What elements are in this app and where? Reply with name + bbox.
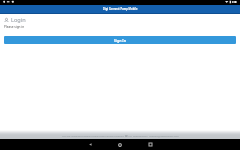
staticText: Digi Connect Pump Mobile bbox=[103, 7, 138, 10]
button[interactable]: Home bbox=[105, 139, 135, 150]
staticText: For any assistance please contact Digi C… bbox=[62, 134, 179, 137]
staticText: Sign In bbox=[114, 38, 127, 43]
button[interactable]: Sign In bbox=[4, 36, 236, 44]
staticText: Please sign in bbox=[4, 25, 25, 29]
staticText: Login bbox=[11, 16, 26, 24]
button[interactable]: Recent apps bbox=[135, 139, 165, 150]
button[interactable]: Back bbox=[75, 139, 105, 150]
